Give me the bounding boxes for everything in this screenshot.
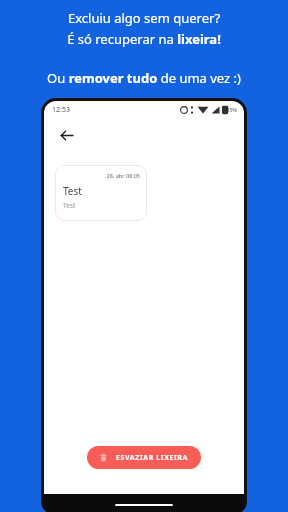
staticText: 95% bbox=[226, 106, 237, 113]
staticText: É só recuperar na lixeira! bbox=[0, 30, 288, 48]
staticText: Test bbox=[63, 184, 82, 198]
staticText: 12:53 bbox=[52, 105, 70, 115]
staticText: 28, abr 08:05 bbox=[63, 172, 140, 179]
button[interactable]: ESVAZIAR LIXEIRA bbox=[87, 446, 201, 469]
staticText: Ou remover tudo de uma vez :) bbox=[0, 69, 288, 87]
staticText: Excluiu algo sem querer? bbox=[0, 9, 288, 27]
button[interactable]: Back bbox=[55, 124, 77, 146]
button[interactable]: 28, abr 08:05 bbox=[55, 165, 147, 221]
staticText: ESVAZIAR LIXEIRA bbox=[116, 453, 188, 463]
staticText: Test bbox=[63, 201, 76, 210]
